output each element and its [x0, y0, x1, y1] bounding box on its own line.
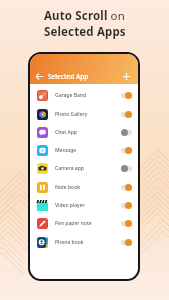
- staticText: Pen paper note: [55, 220, 92, 227]
- staticText: Selected Apps: [44, 24, 126, 40]
- staticText: Note book: [55, 184, 81, 191]
- button[interactable]: Phone book: [30, 233, 138, 251]
- staticText: Phone book: [55, 239, 84, 246]
- staticText: Auto Scroll on: [44, 8, 125, 24]
- staticText: Camera app: [55, 165, 84, 172]
- staticText: Message: [55, 147, 77, 154]
- button[interactable]: Garage Band: [30, 86, 138, 104]
- staticText: Video player: [55, 202, 85, 209]
- staticText: Garage Band: [55, 92, 87, 99]
- button[interactable]: Chat App: [30, 123, 138, 141]
- staticText: Photo Gallery: [55, 111, 88, 118]
- staticText: Selected App: [48, 72, 89, 81]
- button[interactable]: Add: [122, 72, 131, 81]
- button[interactable]: Message: [30, 141, 138, 159]
- button[interactable]: Pen paper note: [30, 214, 138, 232]
- button[interactable]: Video player: [30, 196, 138, 214]
- button[interactable]: Back: [35, 72, 44, 81]
- button[interactable]: Note book: [30, 178, 138, 196]
- staticText: Chat App: [55, 129, 77, 136]
- button[interactable]: Photo Gallery: [30, 105, 138, 123]
- button[interactable]: Camera app: [30, 159, 138, 177]
